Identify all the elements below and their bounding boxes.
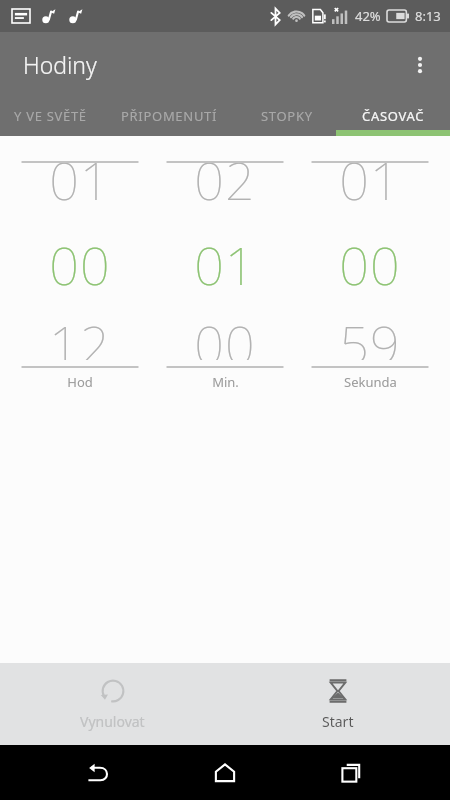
staticText: 02: [194, 163, 256, 206]
staticText: PŘIPOMENUTÍ: [121, 107, 218, 125]
staticText: 01: [339, 163, 401, 206]
staticText: 00: [49, 229, 111, 300]
button[interactable]: 01: [305, 136, 435, 421]
staticText: Sekunda: [344, 373, 397, 391]
staticText: Start: [322, 712, 354, 731]
button[interactable]: ČASOVAČ: [336, 97, 450, 136]
staticText: 42%: [355, 7, 381, 25]
button[interactable]: Home: [196, 745, 254, 800]
staticText: 00: [339, 229, 401, 300]
button[interactable]: Y VE SVĚTĚ: [0, 97, 100, 136]
staticText: Min.: [212, 373, 239, 391]
button[interactable]: Vynulovat: [0, 663, 225, 745]
button[interactable]: Recent apps: [323, 745, 381, 800]
button[interactable]: 01: [15, 136, 145, 421]
button[interactable]: PŘIPOMENUTÍ: [100, 97, 238, 136]
button[interactable]: More options: [396, 41, 444, 89]
button[interactable]: STOPKY: [238, 97, 336, 136]
staticText: 01: [194, 229, 256, 300]
staticText: 01: [49, 163, 111, 206]
staticText: 00: [194, 314, 256, 360]
staticText: STOPKY: [261, 107, 313, 125]
staticText: 8:13: [415, 7, 441, 25]
staticText: Y VE SVĚTĚ: [14, 107, 87, 125]
staticText: Hodiny: [23, 49, 97, 80]
staticText: 12: [49, 314, 111, 360]
button[interactable]: Back: [69, 745, 127, 800]
staticText: 59: [339, 314, 401, 360]
staticText: Hod: [67, 373, 93, 391]
staticText: ČASOVAČ: [362, 107, 425, 125]
button[interactable]: Start: [225, 663, 450, 745]
button[interactable]: 02: [160, 136, 290, 421]
staticText: Vynulovat: [80, 712, 145, 731]
